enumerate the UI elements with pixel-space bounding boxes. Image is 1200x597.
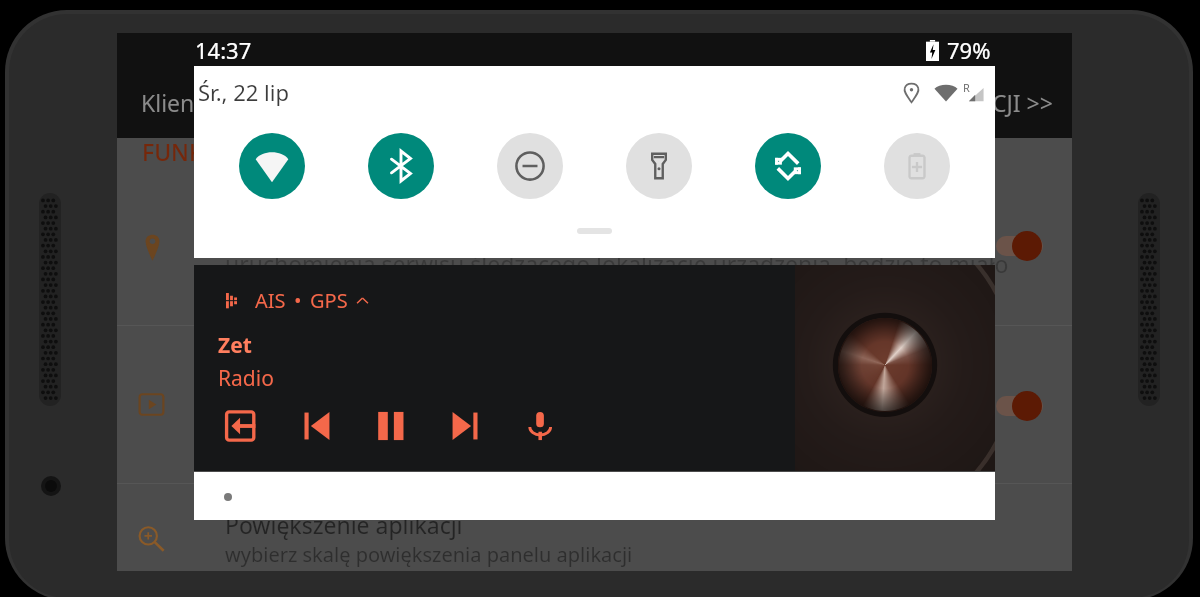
button[interactable]: Auto-rotate <box>755 133 821 199</box>
staticText: GPS <box>310 287 348 314</box>
button[interactable]: Bluetooth <box>368 133 434 199</box>
staticText: Śr., 22 lip <box>198 77 289 107</box>
staticText: Klient <box>141 87 203 118</box>
staticText: Powiększenie aplikacji <box>225 509 463 540</box>
button[interactable]: Do not disturb <box>497 133 563 199</box>
staticText: R <box>963 80 970 95</box>
staticText: FUNKCJE <box>142 136 238 167</box>
staticText: wybierz skalę powiększenia panelu aplika… <box>225 541 633 568</box>
button[interactable]: Battery saver <box>884 133 950 199</box>
staticText: 79% <box>947 35 991 65</box>
button[interactable]: Microphone <box>523 408 558 443</box>
button[interactable]: Flashlight <box>626 133 692 199</box>
staticText: AIS <box>255 287 286 314</box>
staticText: Zet <box>218 331 252 360</box>
button[interactable]: Exit <box>223 408 258 443</box>
button[interactable]: Wi-Fi <box>239 133 305 199</box>
staticText: uruchomienia serwisu śledzącego lokaliza… <box>225 248 1009 279</box>
button[interactable]: Pause <box>373 408 408 443</box>
button[interactable]: Next <box>448 408 483 443</box>
staticText: CJI >> <box>992 87 1053 118</box>
staticText: 14:37 <box>195 35 252 65</box>
staticText: Radio <box>218 364 274 393</box>
button[interactable]: Previous <box>298 408 333 443</box>
staticText: • <box>294 287 302 314</box>
